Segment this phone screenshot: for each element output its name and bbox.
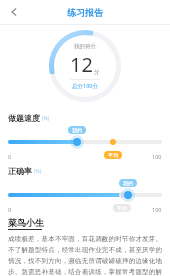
staticText: 我的 — [72, 127, 82, 133]
staticText: 平均 — [117, 205, 127, 211]
button[interactable] — [8, 193, 162, 197]
button[interactable] — [8, 140, 162, 144]
button[interactable]: My value — [73, 138, 81, 146]
staticText: 我的得分 — [74, 43, 96, 50]
staticText: 平均 — [108, 152, 118, 158]
staticText: 100 — [152, 206, 162, 213]
staticText: 总分100分 — [72, 82, 98, 90]
staticText: 正确率 — [8, 166, 32, 176]
staticText: 成绩极差，基本不牢固，百花凋敝的时节你才发芽。不了解题型特点，经常出现作业完不成… — [8, 235, 162, 276]
button[interactable]: My value — [124, 191, 132, 199]
staticText: 100 — [152, 153, 162, 160]
staticText: (%) — [42, 115, 50, 122]
staticText: 菜鸟小生 — [8, 217, 44, 228]
staticText: 0 — [8, 206, 12, 213]
staticText: 我的 — [123, 180, 133, 186]
staticText: 练习报告 — [67, 7, 103, 18]
staticText: (%) — [34, 168, 42, 175]
staticText: 分 — [94, 69, 100, 76]
staticText: 12 — [70, 51, 93, 78]
staticText: 做题速度 — [8, 113, 40, 123]
staticText: 0 — [8, 153, 12, 160]
button[interactable]: Back — [4, 2, 24, 22]
